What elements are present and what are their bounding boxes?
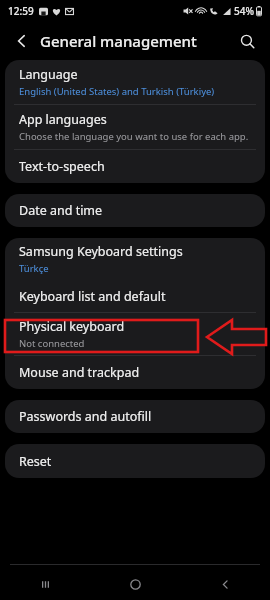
button[interactable]: Search: [232, 26, 262, 56]
button[interactable]: Recents: [0, 568, 90, 600]
staticText: Text-to-speech: [19, 158, 105, 175]
staticText: App languages: [19, 111, 107, 128]
staticText: Date and time: [19, 202, 103, 219]
staticText: Mouse and trackpad: [19, 364, 140, 381]
staticText: Passwords and autofill: [19, 408, 152, 425]
staticText: Samsung Keyboard settings: [19, 243, 183, 260]
staticText: Language: [19, 66, 78, 83]
staticText: Choose the language you want to use for …: [19, 130, 249, 143]
button[interactable]: App languages: [5, 105, 265, 149]
staticText: 12:59: [8, 4, 34, 18]
staticText: Physical keyboard: [19, 318, 125, 335]
button[interactable]: Date and time: [5, 194, 265, 227]
staticText: Not connected: [19, 337, 85, 350]
staticText: 54%: [234, 4, 254, 18]
button[interactable]: Home: [90, 568, 180, 600]
staticText: Keyboard list and default: [19, 288, 166, 305]
staticText: Reset: [19, 453, 52, 470]
button[interactable]: Mouse and trackpad: [5, 356, 265, 389]
button[interactable]: Language: [5, 60, 265, 104]
button[interactable]: Passwords and autofill: [5, 400, 265, 433]
button[interactable]: Back: [8, 27, 36, 55]
button[interactable]: Physical keyboard: [5, 313, 265, 355]
staticText: English (United States) and Turkish (Tür…: [19, 85, 215, 98]
button[interactable]: Text-to-speech: [5, 150, 265, 183]
button[interactable]: Keyboard list and default: [5, 280, 265, 312]
staticText: General management: [40, 31, 197, 51]
button[interactable]: Back: [180, 568, 270, 600]
button[interactable]: Reset: [5, 444, 265, 478]
staticText: Türkçe: [19, 262, 49, 275]
button[interactable]: Samsung Keyboard settings: [5, 238, 265, 280]
